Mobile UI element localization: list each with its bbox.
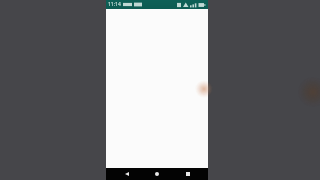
button[interactable]: Back <box>117 168 137 180</box>
button[interactable]: Home <box>147 168 167 180</box>
staticText: 11:14 <box>108 1 121 8</box>
button[interactable]: Recent apps <box>178 168 198 180</box>
